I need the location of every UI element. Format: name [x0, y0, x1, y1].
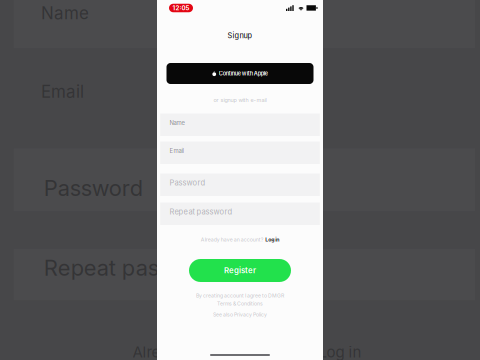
- staticText: Terms & Conditions: [217, 301, 263, 307]
- staticText: Name: [41, 3, 89, 23]
- staticText: Repeat password: [170, 207, 233, 216]
- button[interactable]: Log in: [265, 236, 279, 243]
- button[interactable]: See also Privacy Policy: [213, 311, 267, 318]
- staticText: See also Privacy Policy: [213, 311, 267, 318]
- staticText: By creating account I agree to DMGR: [196, 292, 284, 299]
- staticText: 12:05: [172, 4, 189, 12]
- button[interactable]: Continue with Apple: [166, 63, 313, 84]
- staticText: Email: [170, 147, 184, 154]
- button[interactable]: Terms & Conditions: [217, 301, 263, 307]
- staticText: Register: [224, 266, 256, 275]
- button[interactable]: Register: [189, 259, 291, 282]
- button[interactable]: Repeat password: [160, 202, 320, 225]
- staticText: Password: [170, 178, 206, 187]
- staticText: Log in: [265, 236, 279, 243]
- staticText: Name: [170, 119, 185, 126]
- staticText: Already have an account? Log in: [132, 343, 361, 360]
- staticText: Already have an account?: [201, 236, 264, 243]
- button[interactable]: Email: [160, 141, 320, 164]
- button[interactable]: Password: [160, 173, 320, 196]
- staticText: Continue with Apple: [219, 70, 268, 77]
- staticText: Email: [41, 81, 84, 102]
- staticText: Repeat password: [44, 254, 221, 281]
- button[interactable]: Name: [160, 113, 320, 136]
- staticText: or signup with e-mail: [213, 97, 266, 103]
- staticText: Signup: [227, 31, 252, 40]
- staticText: Password: [44, 175, 143, 201]
